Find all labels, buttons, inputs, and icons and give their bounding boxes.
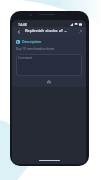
button[interactable]: Attach photo <box>46 79 52 85</box>
staticText: Buy 10 merchandise items <box>16 47 55 51</box>
staticText: 14:48 <box>18 22 27 27</box>
button[interactable]: Comment <box>16 54 82 76</box>
button[interactable]: Expand <box>77 28 83 34</box>
staticText: Description <box>22 39 42 44</box>
button[interactable]: Back <box>15 28 22 35</box>
staticText: Replenish stocks of ... <box>25 28 77 34</box>
staticText: Comment <box>18 56 33 60</box>
